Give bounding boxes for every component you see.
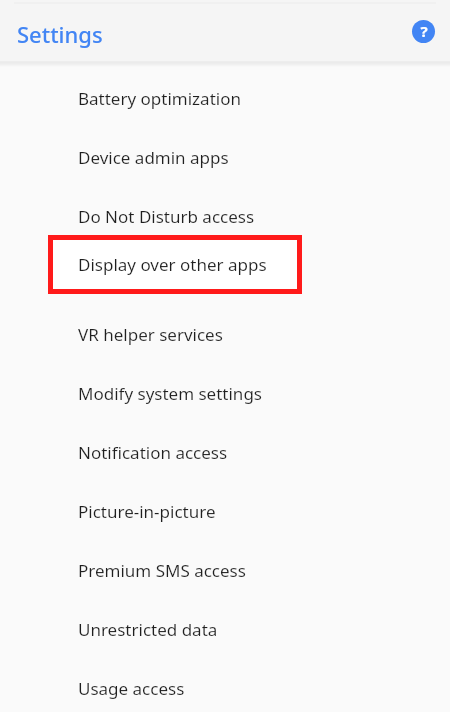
staticText: Display over other apps [78, 264, 267, 287]
button[interactable]: Battery optimization [0, 69, 450, 128]
staticText: ? [420, 21, 428, 41]
staticText: Do Not Disturb access [78, 205, 255, 228]
staticText: Modify system settings [78, 382, 262, 405]
staticText: Settings [17, 19, 103, 49]
button[interactable]: Do Not Disturb access [0, 187, 450, 246]
button[interactable]: Unrestricted data [0, 600, 450, 659]
button[interactable]: Device admin apps [0, 128, 450, 187]
button[interactable]: Picture-in-picture [0, 482, 450, 541]
button[interactable]: Display over other apps [0, 246, 450, 305]
staticText: Display over other apps [78, 253, 267, 276]
button[interactable]: Usage access [0, 659, 450, 712]
button[interactable]: Premium SMS access [0, 541, 450, 600]
staticText: Premium SMS access [78, 559, 246, 582]
button[interactable]: Help [410, 18, 437, 45]
staticText: Usage access [78, 677, 185, 700]
staticText: Device admin apps [78, 146, 229, 169]
button[interactable]: Notification access [0, 423, 450, 482]
staticText: Notification access [78, 441, 228, 464]
staticText: Unrestricted data [78, 618, 218, 641]
button[interactable]: Modify system settings [0, 364, 450, 423]
staticText: Battery optimization [78, 87, 241, 110]
staticText: Picture-in-picture [78, 500, 216, 523]
staticText: VR helper services [78, 323, 223, 346]
button[interactable]: VR helper services [0, 305, 450, 364]
